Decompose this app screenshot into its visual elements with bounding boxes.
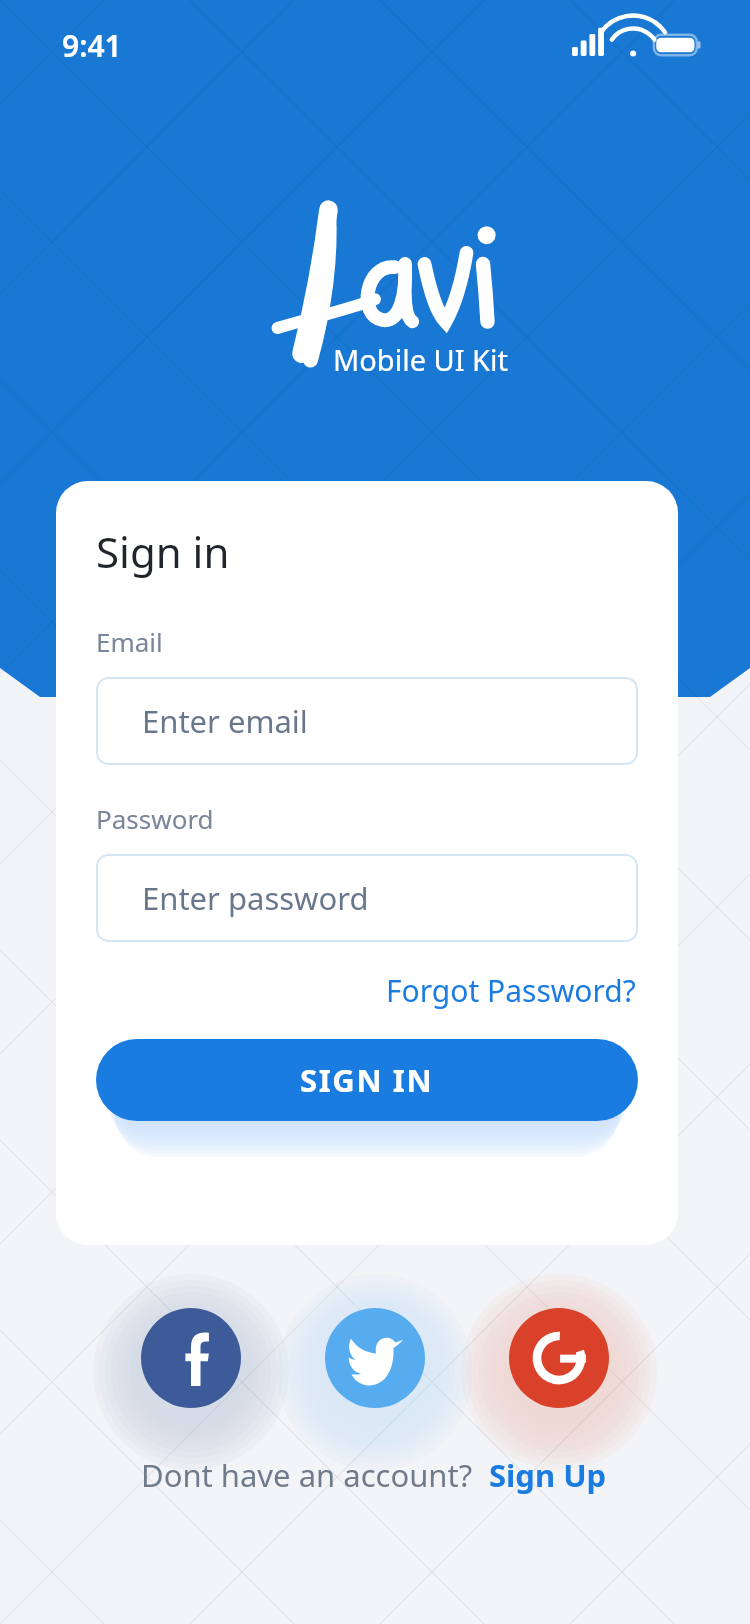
staticText: Sign Up xyxy=(489,1454,607,1496)
staticText: Mobile UI Kit xyxy=(333,340,509,379)
button[interactable]: Sign in with Twitter xyxy=(325,1308,425,1408)
staticText: Email xyxy=(96,624,163,659)
button[interactable]: SIGN IN xyxy=(96,1039,638,1121)
staticText: Password xyxy=(96,801,214,836)
button[interactable]: Forgot Password? xyxy=(384,964,638,1017)
button[interactable]: Enter password xyxy=(96,854,638,942)
button[interactable]: Enter email xyxy=(96,677,638,765)
staticText: Forgot Password? xyxy=(386,970,636,1011)
staticText: Enter password xyxy=(142,877,369,919)
staticText: Dont have an account? xyxy=(141,1454,473,1496)
staticText: 9:41 xyxy=(62,25,122,66)
button[interactable]: Sign Up xyxy=(487,1448,609,1502)
button[interactable]: Sign in with Facebook xyxy=(141,1308,241,1408)
staticText: Enter email xyxy=(142,700,308,742)
staticText: SIGN IN xyxy=(300,1059,434,1101)
button[interactable]: Sign in with Google xyxy=(509,1308,609,1408)
staticText: Sign in xyxy=(96,523,230,580)
